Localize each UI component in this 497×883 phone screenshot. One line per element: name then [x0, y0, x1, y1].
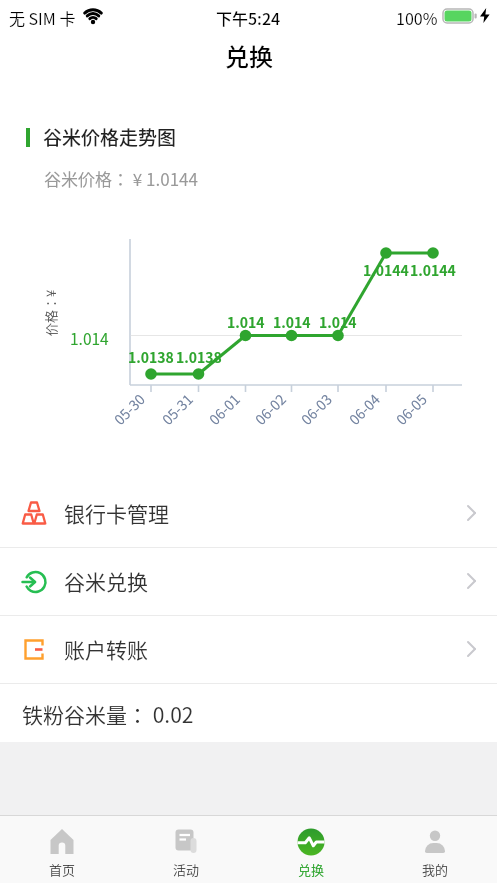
staticText: 1.014 — [70, 327, 109, 349]
button[interactable]: 谷米兑换 — [0, 547, 497, 614]
staticText: 1.014 — [319, 312, 357, 332]
staticText: 银行卡管理 — [64, 498, 169, 528]
staticText: 活动 — [173, 860, 200, 879]
staticText: 谷米价格： ¥ 1.0144 — [44, 166, 198, 191]
staticText: 1.0144 — [410, 260, 456, 280]
staticText: 1.0144 — [363, 260, 409, 280]
button[interactable]: 我的 — [380, 820, 490, 882]
staticText: 1.014 — [273, 312, 311, 332]
staticText: 无 SIM 卡 — [9, 6, 76, 29]
staticText: 1.014 — [227, 312, 265, 332]
staticText: 账户转账 — [64, 634, 148, 664]
staticText: 06-01 — [204, 389, 244, 429]
staticText: 铁粉谷米量： 0.02 — [22, 699, 194, 729]
button[interactable]: 银行卡管理 — [0, 479, 497, 546]
staticText: 05-31 — [157, 389, 197, 429]
staticText: 首页 — [49, 860, 76, 879]
staticText: 06-03 — [296, 389, 336, 429]
staticText: 06-04 — [344, 389, 384, 429]
staticText: 兑换 — [298, 860, 325, 879]
staticText: 谷米价格走势图 — [43, 123, 177, 151]
staticText: 1.0138 — [128, 347, 174, 367]
staticText: 06-05 — [391, 389, 431, 429]
staticText: 05-30 — [109, 389, 149, 429]
staticText: 我的 — [422, 860, 449, 879]
staticText: 谷米兑换 — [64, 566, 148, 596]
staticText: 06-02 — [250, 389, 290, 429]
staticText: 1.0138 — [176, 347, 222, 367]
button[interactable]: 活动 — [131, 820, 241, 882]
button[interactable]: 账户转账 — [0, 615, 497, 682]
button[interactable]: 首页 — [7, 820, 117, 882]
staticText: 下午5:24 — [216, 6, 281, 29]
staticText: 价格：¥ — [41, 289, 60, 336]
staticText: 100% — [396, 6, 438, 29]
button[interactable]: 兑换 — [256, 820, 366, 882]
staticText: 兑换 — [225, 38, 273, 73]
